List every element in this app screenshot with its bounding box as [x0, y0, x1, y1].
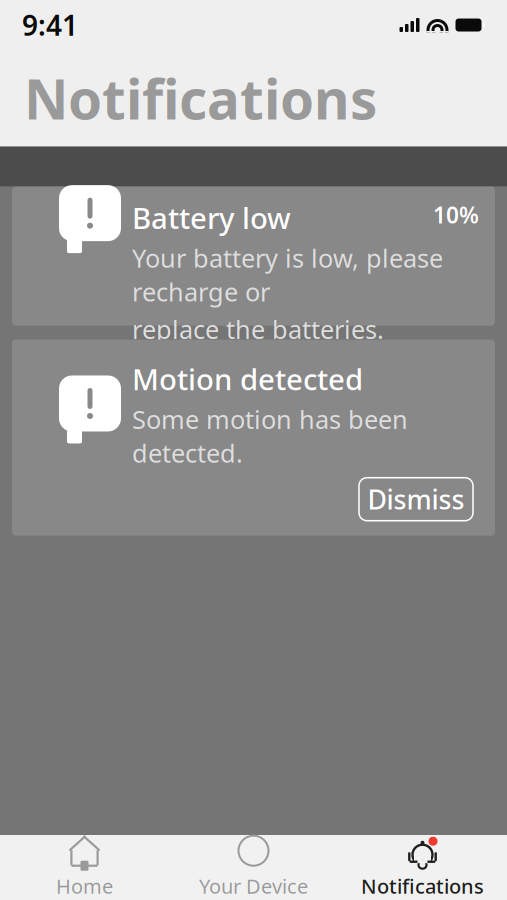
- staticText: Your Device: [199, 873, 308, 899]
- staticText: Motion detected: [132, 359, 363, 398]
- staticText: Your battery is low, please recharge or: [132, 241, 443, 308]
- staticText: 10%: [433, 200, 479, 230]
- staticText: 9:41: [22, 6, 78, 44]
- staticText: Notifications: [24, 62, 377, 135]
- button[interactable]: Notifications: [338, 835, 507, 900]
- button[interactable]: 10%: [12, 187, 495, 326]
- staticText: replace the batteries.: [132, 312, 384, 346]
- staticText: Some motion has been detected.: [132, 402, 408, 470]
- button[interactable]: Dismiss: [359, 478, 473, 521]
- button[interactable]: Motion detected: [12, 340, 495, 536]
- button[interactable]: Home: [0, 835, 169, 900]
- button[interactable]: Your Device: [169, 835, 338, 900]
- staticText: Battery low: [132, 198, 291, 237]
- staticText: Notifications: [361, 873, 484, 899]
- staticText: Home: [56, 873, 113, 899]
- staticText: Dismiss: [367, 481, 464, 517]
